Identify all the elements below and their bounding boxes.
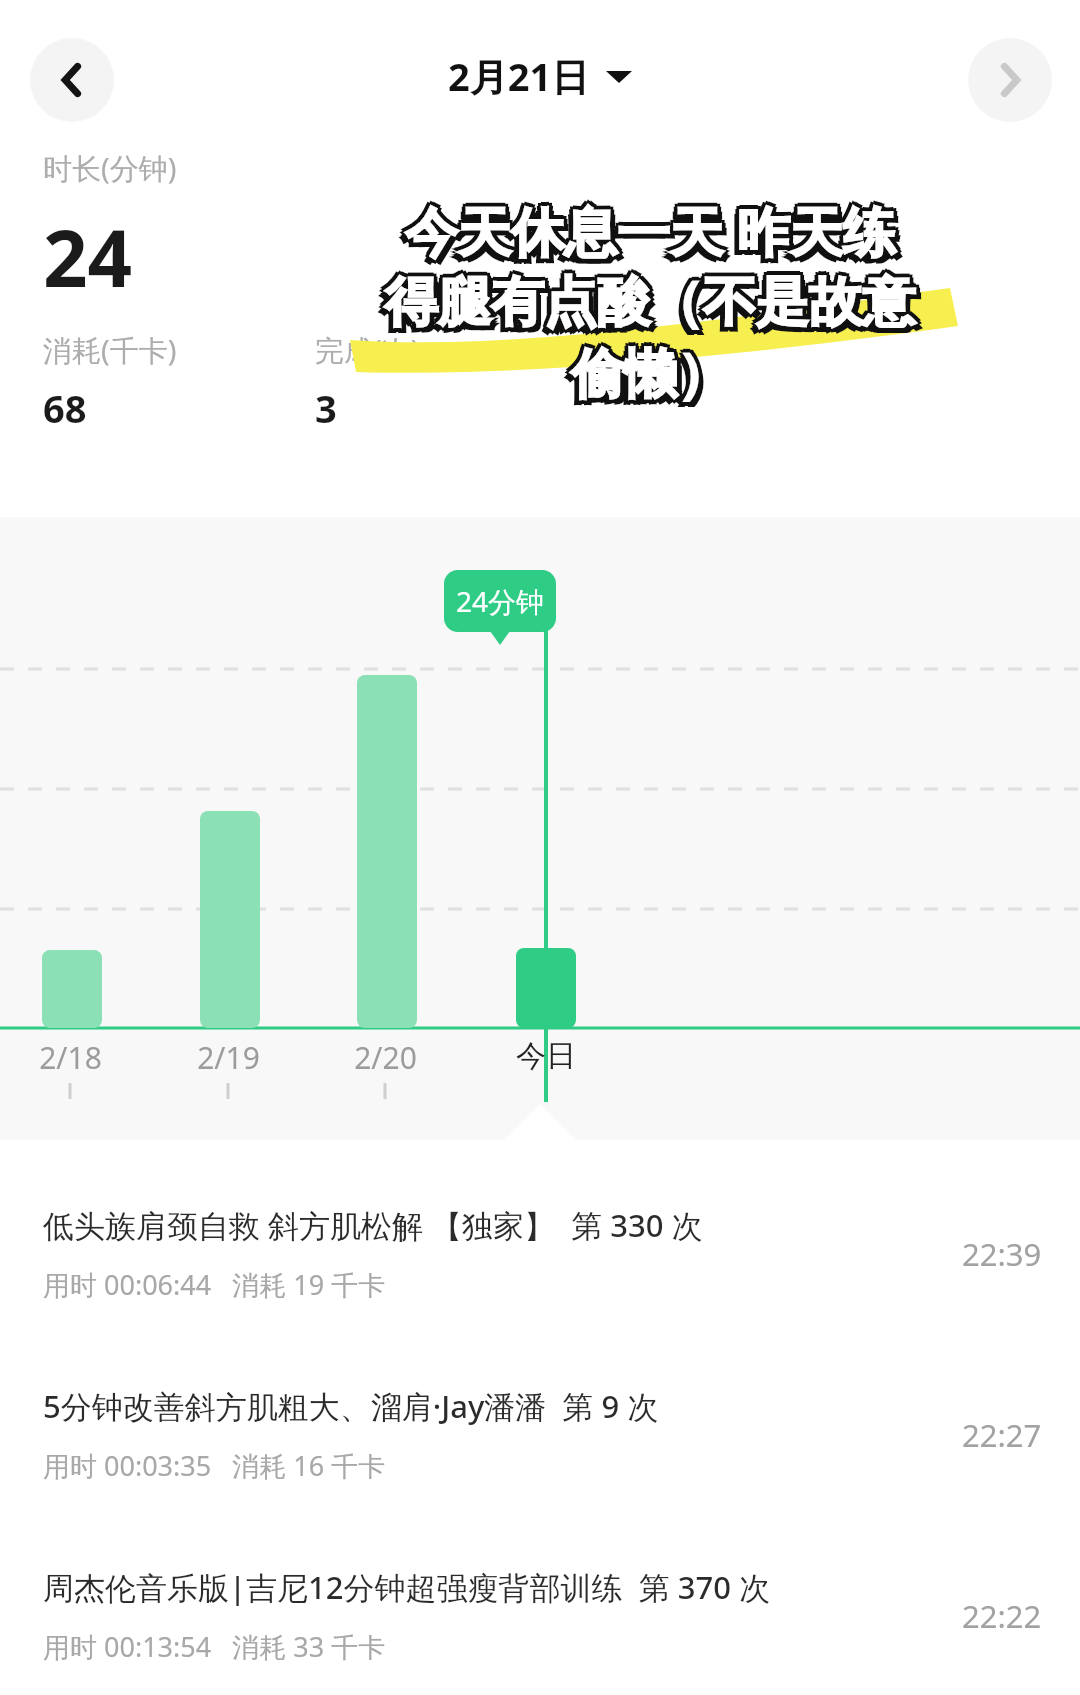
staticText: 偷懒） xyxy=(574,344,733,411)
staticText: 今天休息一天 昨天练 xyxy=(405,194,896,266)
button[interactable]: Next day xyxy=(968,38,1052,122)
staticText: 得腿有点酸（不是故意 xyxy=(385,269,915,336)
staticText: 22:27 xyxy=(962,1414,1042,1456)
staticText: 得腿有点酸（不是故意 xyxy=(382,272,912,339)
staticText: 22:39 xyxy=(962,1233,1042,1275)
staticText: 今天休息一天 昨天练 xyxy=(405,190,896,262)
button[interactable]: 2月21日 xyxy=(448,50,632,102)
staticText: 偷懒） xyxy=(576,346,735,413)
staticText: 偷懒） xyxy=(571,341,730,408)
staticText: 时长(分钟) xyxy=(43,148,177,188)
staticText: 2/18 xyxy=(39,1037,102,1078)
button[interactable]: 5分钟改善斜方肌粗大、溜肩·Jay潘潘 第 9 次 xyxy=(0,1344,1080,1525)
staticText: 消耗(千卡) xyxy=(43,330,177,370)
staticText: 5分钟改善斜方肌粗大、溜肩·Jay潘潘 第 9 次 xyxy=(43,1385,659,1427)
staticText: 得腿有点酸（不是故意 xyxy=(385,273,915,340)
staticText: 今日 xyxy=(516,1037,576,1075)
staticText: 2/19 xyxy=(197,1037,260,1078)
staticText: 今天休息一天 昨天练 xyxy=(400,199,891,271)
staticText: 偷懒） xyxy=(567,341,726,408)
staticText: 偷懒） xyxy=(571,337,730,404)
staticText: 得腿有点酸（不是故意 xyxy=(385,265,915,332)
staticText: 周杰伦音乐版|吉尼12分钟超强瘦背部训练 第 370 次 xyxy=(43,1566,770,1608)
staticText: 偷懒） xyxy=(575,341,734,408)
staticText: 偷懒） xyxy=(568,344,727,411)
button[interactable]: 周杰伦音乐版|吉尼12分钟超强瘦背部训练 第 370 次 xyxy=(0,1525,1080,1695)
staticText: 偷懒） xyxy=(568,338,727,405)
staticText: 得腿有点酸（不是故意 xyxy=(382,266,912,333)
staticText: 得腿有点酸（不是故意 xyxy=(388,266,918,333)
staticText: 用时 00:13:54 消耗 33 千卡 xyxy=(43,1628,386,1665)
staticText: 完成(次) xyxy=(315,330,420,370)
staticText: 得腿有点酸（不是故意 xyxy=(380,274,910,341)
staticText: 今天休息一天 昨天练 xyxy=(405,198,896,270)
staticText: 22:22 xyxy=(962,1595,1042,1637)
staticText: 低头族肩颈自救 斜方肌松解 【独家】 第 330 次 xyxy=(43,1204,703,1246)
staticText: 用时 00:03:35 消耗 16 千卡 xyxy=(43,1447,386,1484)
button[interactable]: Back xyxy=(30,38,114,122)
staticText: 2月21日 xyxy=(448,50,590,102)
staticText: 24 xyxy=(43,204,133,310)
staticText: 偷懒） xyxy=(571,345,730,412)
staticText: 用时 00:06:44 消耗 19 千卡 xyxy=(43,1266,386,1303)
staticText: 24分钟 xyxy=(456,582,545,620)
staticText: 2/20 xyxy=(354,1037,417,1078)
button[interactable]: 低头族肩颈自救 斜方肌松解 【独家】 第 330 次 xyxy=(0,1163,1080,1344)
staticText: 得腿有点酸（不是故意 xyxy=(390,274,920,341)
staticText: 偷懒） xyxy=(574,338,733,405)
staticText: 偷懒） xyxy=(566,346,725,413)
staticText: 今天休息一天 昨天练 xyxy=(409,194,900,266)
staticText: 今天休息一天 昨天练 xyxy=(408,191,899,263)
staticText: 3 xyxy=(315,382,337,434)
staticText: 今天休息一天 昨天练 xyxy=(402,197,893,269)
staticText: 今天休息一天 昨天练 xyxy=(402,191,893,263)
staticText: 得腿有点酸（不是故意 xyxy=(388,272,918,339)
staticText: 得腿有点酸（不是故意 xyxy=(389,269,919,336)
staticText: 今天休息一天 昨天练 xyxy=(408,197,899,269)
staticText: 今天休息一天 昨天练 xyxy=(410,199,901,271)
staticText: 今天休息一天 昨天练 xyxy=(401,194,892,266)
staticText: 得腿有点酸（不是故意 xyxy=(381,269,911,336)
staticText: 68 xyxy=(43,382,87,434)
